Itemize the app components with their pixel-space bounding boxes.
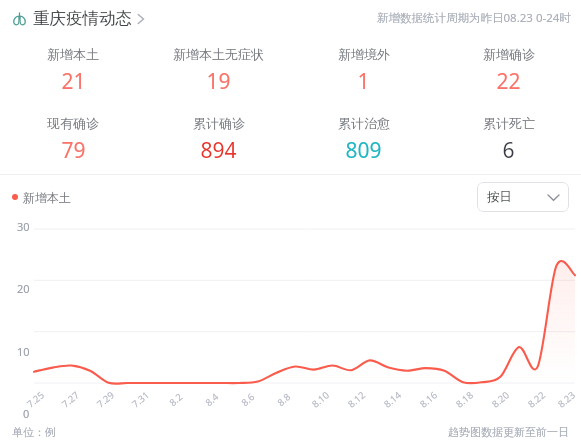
button[interactable]: 累计死亡 (436, 105, 581, 174)
staticText: 21 (61, 67, 86, 96)
staticText: 0 (23, 406, 30, 421)
staticText: 6 (502, 136, 515, 165)
staticText: 8.12 (345, 388, 368, 411)
staticText: 8.23 (555, 388, 578, 411)
staticText: 现有确诊 (47, 115, 99, 131)
staticText: 累计死亡 (483, 115, 535, 131)
button[interactable]: 累计治愈 (291, 105, 436, 174)
staticText: 79 (61, 136, 86, 165)
staticText: 8.6 (238, 390, 258, 409)
staticText: 8.2 (166, 390, 186, 409)
staticText: 1 (357, 67, 370, 96)
staticText: 8.8 (274, 390, 294, 409)
button[interactable]: 按日 (477, 182, 569, 212)
staticText: 新增本土无症状 (173, 46, 264, 62)
staticText: 7.27 (59, 388, 82, 411)
other: 疫情图标 (12, 11, 27, 26)
staticText: 按日 (487, 189, 512, 205)
button[interactable]: 新增本土 (0, 36, 146, 105)
button[interactable]: 新增本土无症状 (146, 36, 291, 105)
staticText: 8.22 (525, 388, 548, 411)
staticText: 7.29 (94, 388, 117, 411)
staticText: 19 (206, 67, 231, 96)
staticText: 8.20 (489, 388, 512, 411)
staticText: 7.25 (24, 388, 47, 411)
staticText: 新增本土 (23, 190, 71, 205)
staticText: 新增本土 (47, 46, 99, 62)
staticText: 8.14 (381, 388, 404, 411)
button[interactable]: 疫情图标 (0, 4, 154, 33)
button[interactable]: 现有确诊 (0, 105, 146, 174)
staticText: 重庆疫情动态 (33, 8, 132, 29)
button[interactable]: 累计确诊 (146, 105, 291, 174)
staticText: 7.31 (129, 388, 152, 411)
staticText: 894 (200, 136, 237, 165)
staticText: 8.4 (202, 390, 222, 409)
staticText: 22 (496, 67, 521, 96)
staticText: 30 (17, 219, 30, 234)
staticText: 累计治愈 (338, 115, 390, 131)
staticText: 新增数据统计周期为昨日08.23 0-24时 (377, 10, 571, 26)
staticText: 累计确诊 (193, 115, 245, 131)
staticText: 新增境外 (338, 46, 390, 62)
staticText: 8.18 (453, 388, 476, 411)
button[interactable]: 新增境外 (291, 36, 436, 105)
staticText: 20 (17, 281, 30, 296)
button[interactable]: 新增确诊 (436, 36, 581, 105)
staticText: 10 (17, 344, 30, 359)
staticText: 809 (345, 136, 382, 165)
staticText: 新增确诊 (483, 46, 535, 62)
staticText: 8.10 (309, 388, 332, 411)
staticText: 趋势图数据更新至前一日 (448, 425, 569, 439)
staticText: 8.16 (417, 388, 440, 411)
staticText: 单位：例 (12, 425, 56, 439)
